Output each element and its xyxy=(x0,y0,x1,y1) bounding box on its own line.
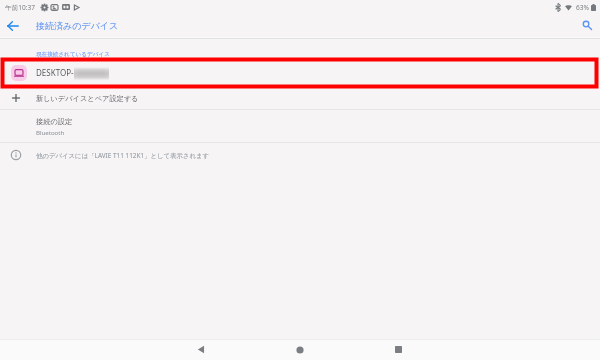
staticText: 新しいデバイスとペア設定する xyxy=(36,94,139,103)
staticText: 接続済みのデバイス xyxy=(36,20,119,31)
staticText: 接続の設定 xyxy=(36,117,73,126)
staticText: 現在接続されているデバイス xyxy=(36,51,110,58)
button[interactable]: Recents xyxy=(387,339,409,360)
staticText: 他のデバイスには「LAVIE T11 112K1」として表示されます xyxy=(36,151,210,160)
staticText: 午前10:37 xyxy=(5,3,36,12)
button[interactable]: Home xyxy=(289,339,311,360)
button[interactable]: Back xyxy=(190,339,212,360)
button[interactable]: Search xyxy=(574,13,600,38)
button[interactable]: 接続の設定 xyxy=(0,110,600,142)
button[interactable]: Back xyxy=(0,13,26,38)
staticText: DESKTOP- xyxy=(36,67,74,78)
button[interactable]: 新しいデバイスとペア設定する xyxy=(0,87,600,109)
button[interactable]: DESKTOP- xyxy=(0,58,600,87)
staticText: Bluetooth xyxy=(36,128,65,136)
staticText: 63% xyxy=(576,3,590,12)
